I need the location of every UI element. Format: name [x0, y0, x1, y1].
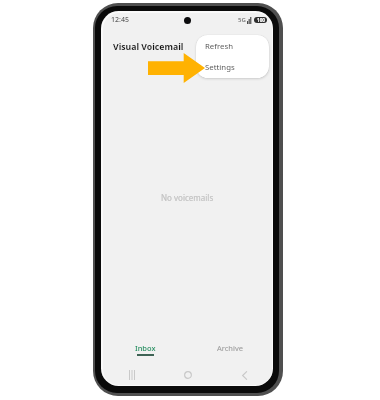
- staticText: Settings: [205, 62, 235, 73]
- staticText: 100: [257, 17, 265, 23]
- staticText: Inbox: [135, 343, 156, 353]
- staticText: Refresh: [205, 41, 233, 52]
- button[interactable]: Back: [216, 363, 272, 385]
- button[interactable]: Inbox: [103, 339, 187, 369]
- staticText: No voicemails: [161, 192, 214, 203]
- button[interactable]: Recent apps: [103, 363, 160, 385]
- staticText: 5G: [238, 16, 246, 24]
- button[interactable]: Archive: [187, 339, 272, 369]
- button[interactable]: Home: [160, 363, 216, 385]
- staticText: Visual Voicemail: [113, 41, 184, 53]
- button[interactable]: Refresh: [196, 35, 269, 57]
- button[interactable]: Settings: [196, 57, 269, 78]
- staticText: Archive: [217, 343, 243, 353]
- staticText: 12:45: [111, 15, 129, 25]
